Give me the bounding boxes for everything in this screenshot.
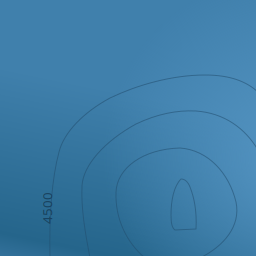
staticText: 4500 bbox=[31, 199, 63, 217]
